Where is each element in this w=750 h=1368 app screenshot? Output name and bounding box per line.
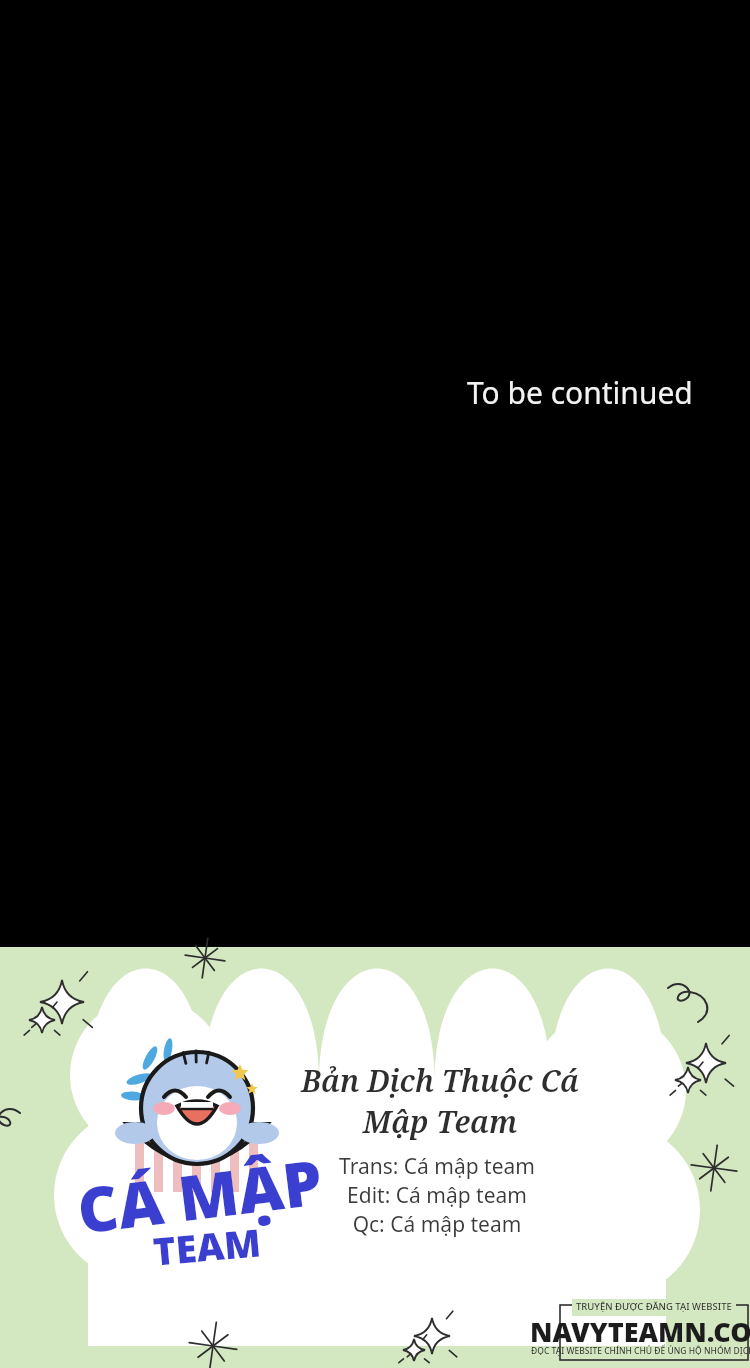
other: Cá Mập Team translation credits [0,0,750,1368]
button[interactable] [0,0,750,1368]
